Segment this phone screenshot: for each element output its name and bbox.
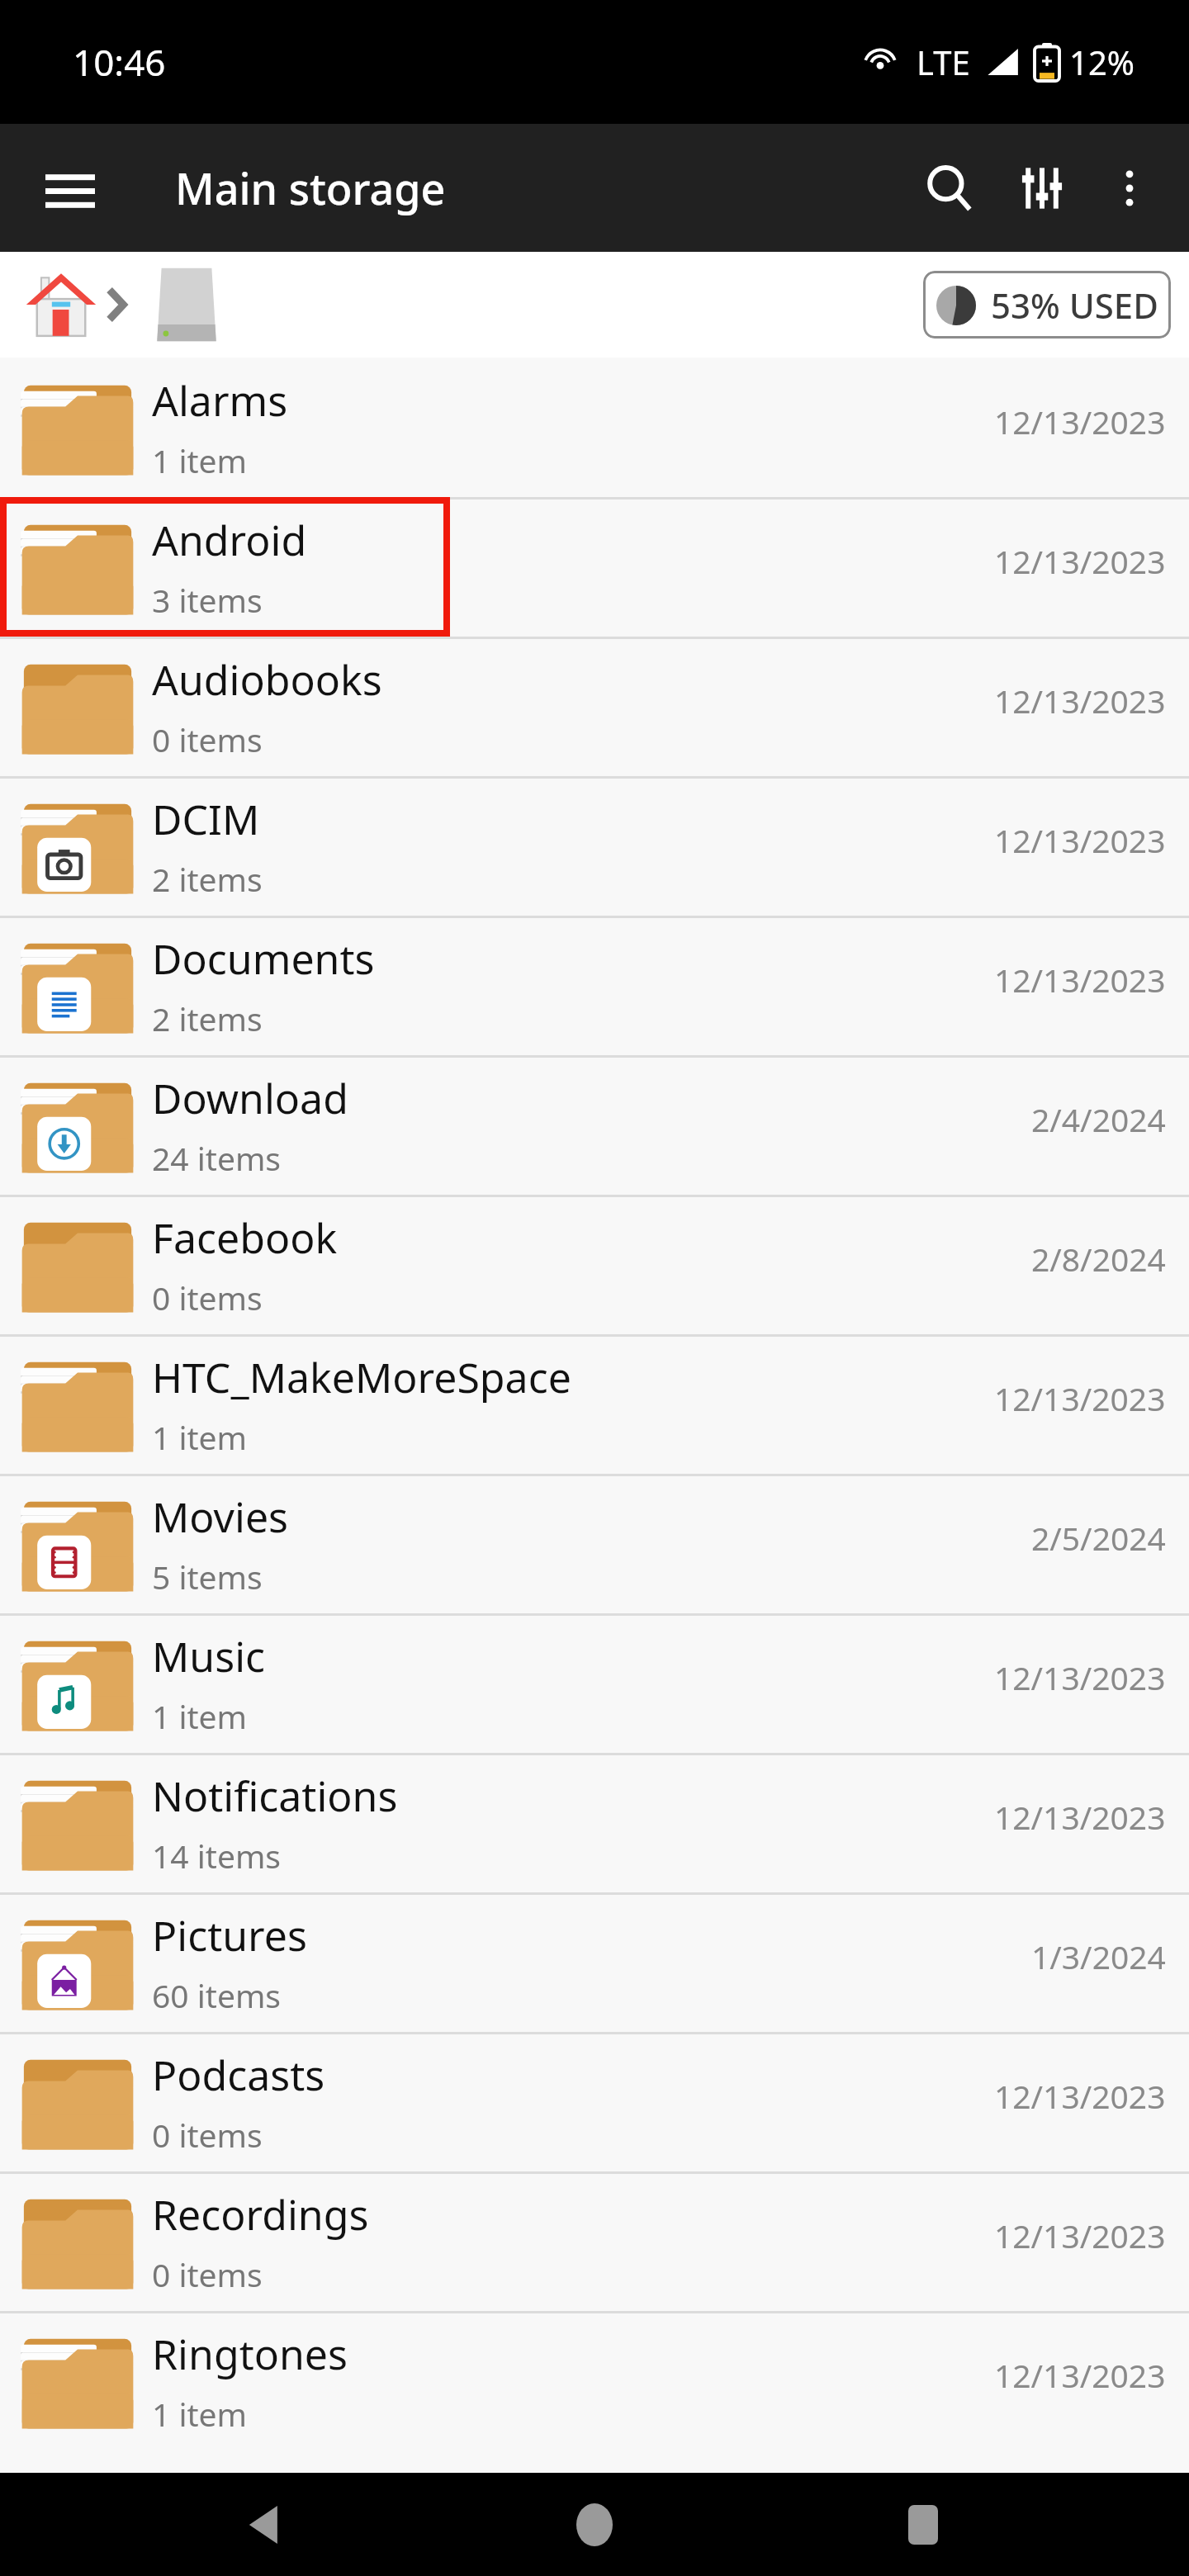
button[interactable]: Documents (0, 916, 1189, 1055)
staticText: 12/13/2023 (994, 818, 1166, 862)
staticText: 12/13/2023 (994, 1655, 1166, 1699)
button[interactable]: HTC_MakeMoreSpace (0, 1334, 1189, 1474)
staticText: 1 item (152, 2392, 248, 2436)
staticText: Documents (152, 930, 375, 987)
button[interactable]: Home (18, 262, 104, 348)
staticText: 2/4/2024 (1031, 1097, 1166, 1141)
staticText: 53% USED (991, 282, 1158, 329)
staticText: 12/13/2023 (994, 1795, 1166, 1839)
staticText: 0 items (152, 1276, 263, 1319)
button[interactable]: Download (0, 1055, 1189, 1195)
button[interactable]: Audiobooks (0, 637, 1189, 776)
staticText: LTE (917, 40, 970, 84)
staticText: 10:46 (73, 37, 166, 87)
button[interactable]: Movies (0, 1474, 1189, 1613)
button[interactable]: Music (0, 1613, 1189, 1753)
button[interactable]: Alarms (0, 358, 1189, 497)
staticText: 0 items (152, 717, 263, 761)
staticText: 2 items (152, 857, 263, 901)
staticText: Android (152, 512, 307, 568)
button[interactable]: Recent apps (861, 2473, 985, 2576)
button[interactable]: Podcasts (0, 2032, 1189, 2171)
button[interactable]: Home (533, 2473, 656, 2576)
staticText: 12/13/2023 (994, 400, 1166, 443)
staticText: 12/13/2023 (994, 1376, 1166, 1420)
staticText: HTC_MakeMoreSpace (152, 1349, 571, 1405)
staticText: Download (152, 1070, 348, 1126)
button[interactable]: Search (903, 142, 996, 234)
staticText: Recordings (152, 2186, 369, 2242)
staticText: Alarms (152, 372, 288, 429)
staticText: Notifications (152, 1768, 398, 1824)
staticText: 2/5/2024 (1031, 1516, 1166, 1560)
button[interactable]: Android (0, 497, 1189, 637)
button[interactable]: DCIM (0, 776, 1189, 916)
button[interactable]: Facebook (0, 1195, 1189, 1334)
staticText: 2 items (152, 997, 263, 1040)
staticText: Main storage (175, 159, 446, 217)
button[interactable]: Back (205, 2473, 329, 2576)
button[interactable]: More options (1088, 147, 1171, 230)
staticText: 12/13/2023 (994, 958, 1166, 1002)
staticText: Music (152, 1628, 266, 1684)
staticText: 60 items (152, 1973, 282, 2017)
staticText: 12/13/2023 (994, 539, 1166, 583)
staticText: 2/8/2024 (1031, 1237, 1166, 1281)
button[interactable]: 53% USED (923, 271, 1171, 339)
button[interactable]: Notifications (0, 1753, 1189, 1892)
staticText: Podcasts (152, 2047, 325, 2103)
staticText: 14 items (152, 1834, 282, 1878)
button[interactable]: Ringtones (0, 2311, 1189, 2451)
button[interactable]: Open navigation drawer (25, 143, 116, 234)
staticText: 5 items (152, 1555, 263, 1598)
staticText: 0 items (152, 2252, 263, 2296)
button[interactable]: Pictures (0, 1892, 1189, 2032)
staticText: 12/13/2023 (994, 2214, 1166, 2257)
staticText: Audiobooks (152, 651, 382, 708)
staticText: 12/13/2023 (994, 2353, 1166, 2397)
staticText: 3 items (152, 578, 263, 622)
button[interactable]: Sort and filter (996, 142, 1088, 234)
staticText: 1 item (152, 1694, 248, 1738)
staticText: 12/13/2023 (994, 679, 1166, 722)
staticText: Facebook (152, 1210, 338, 1266)
button[interactable]: Recordings (0, 2171, 1189, 2311)
staticText: 12/13/2023 (994, 2074, 1166, 2118)
button[interactable]: Main storage (147, 262, 226, 348)
staticText: Movies (152, 1489, 289, 1545)
staticText: 0 items (152, 2113, 263, 2157)
staticText: 12% (1069, 40, 1135, 84)
staticText: Pictures (152, 1907, 307, 1963)
staticText: Ringtones (152, 2326, 348, 2382)
staticText: 1/3/2024 (1031, 1934, 1166, 1978)
staticText: 1 item (152, 438, 248, 482)
staticText: 24 items (152, 1136, 282, 1180)
staticText: DCIM (152, 791, 260, 847)
staticText: 1 item (152, 1415, 248, 1459)
